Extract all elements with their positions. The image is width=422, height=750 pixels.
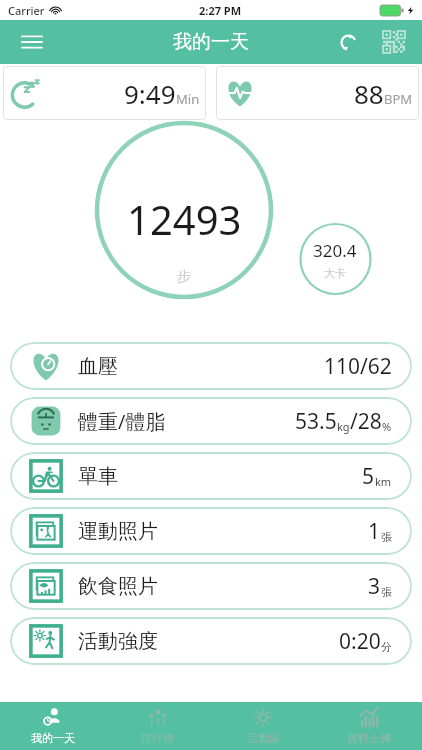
- staticText: 張: [381, 585, 392, 599]
- button[interactable]: 運動照片: [10, 507, 412, 555]
- staticText: 張: [381, 530, 392, 544]
- staticText: kg: [337, 419, 350, 434]
- button[interactable]: Sync: [328, 22, 368, 62]
- button[interactable]: 9:49: [3, 66, 206, 120]
- button[interactable]: 88: [216, 66, 419, 120]
- staticText: 運動照片: [78, 519, 158, 544]
- staticText: 0:20: [339, 627, 381, 656]
- staticText: 320.4: [313, 239, 357, 262]
- button[interactable]: 12493: [96, 144, 272, 320]
- staticText: 9:49: [124, 76, 176, 111]
- button[interactable]: 體重/體脂: [10, 397, 412, 445]
- staticText: 12493: [127, 192, 242, 246]
- button[interactable]: Menu: [12, 22, 52, 62]
- staticText: 53.5: [295, 407, 337, 436]
- staticText: 1: [368, 517, 381, 546]
- staticText: BPM: [384, 90, 413, 108]
- button[interactable]: 活動區: [210, 702, 316, 750]
- staticText: 5: [362, 462, 375, 491]
- staticText: 飲食照片: [78, 574, 158, 599]
- button[interactable]: 資料上傳: [316, 702, 422, 750]
- staticText: 110/62: [324, 352, 392, 381]
- button[interactable]: 單車: [10, 452, 412, 500]
- staticText: 2:27 PM: [199, 3, 242, 18]
- staticText: 我的一天: [173, 30, 249, 54]
- staticText: 大卡: [324, 266, 346, 280]
- staticText: km: [375, 474, 392, 489]
- button[interactable]: 320.4: [300, 224, 370, 294]
- button[interactable]: 血壓: [10, 342, 412, 390]
- staticText: Min: [176, 90, 200, 108]
- button[interactable]: 排行榜: [105, 702, 210, 750]
- staticText: 單車: [78, 464, 118, 489]
- staticText: 活動強度: [78, 629, 158, 654]
- button[interactable]: 活動強度: [10, 617, 412, 665]
- staticText: 步: [177, 268, 191, 286]
- staticText: %: [382, 419, 392, 434]
- staticText: 活動區: [247, 731, 280, 745]
- button[interactable]: 我的一天: [0, 702, 105, 750]
- staticText: Carrier: [8, 3, 45, 18]
- button[interactable]: 飲食照片: [10, 562, 412, 610]
- staticText: /28: [350, 407, 382, 436]
- staticText: 排行榜: [141, 731, 174, 745]
- staticText: 分: [381, 640, 392, 654]
- staticText: 資料上傳: [347, 731, 391, 745]
- staticText: 我的一天: [31, 731, 75, 745]
- staticText: 88: [354, 76, 384, 111]
- staticText: 血壓: [78, 354, 118, 379]
- button[interactable]: QR code: [374, 22, 414, 62]
- staticText: 體重/體脂: [78, 408, 166, 435]
- staticText: 3: [368, 572, 381, 601]
